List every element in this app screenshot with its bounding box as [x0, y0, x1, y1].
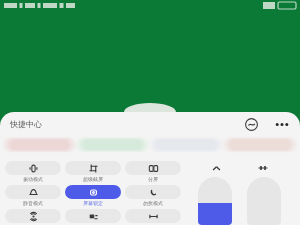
button[interactable]: Volume settings [248, 162, 278, 174]
button[interactable]: More options [274, 118, 290, 131]
button[interactable]: Quick toggle [125, 209, 181, 223]
button[interactable]: Expand brightness [201, 162, 231, 174]
staticText: 快捷中心 [10, 119, 42, 129]
button[interactable] [226, 137, 294, 155]
staticText: 振动模式 [5, 176, 61, 182]
staticText: 超级截屏 [65, 176, 121, 182]
staticText: 分屏 [125, 176, 181, 182]
button[interactable]: 静音模式 [5, 185, 61, 206]
button[interactable] [152, 137, 220, 155]
button[interactable]: Cloud settings [245, 118, 258, 131]
button[interactable]: 振动模式 [5, 161, 61, 182]
button[interactable] [79, 137, 146, 155]
button[interactable]: Brightness [198, 177, 232, 225]
button[interactable]: 分屏 [125, 161, 181, 182]
button[interactable]: 超级截屏 [65, 161, 121, 182]
button[interactable]: Quick toggle [65, 209, 121, 223]
staticText: 屏幕锁定 [65, 200, 121, 206]
button[interactable]: Volume [247, 177, 281, 225]
button[interactable]: 屏幕锁定 [65, 185, 121, 206]
staticText: 勿扰模式 [125, 200, 181, 206]
staticText: 静音模式 [5, 200, 61, 206]
button[interactable]: 勿扰模式 [125, 185, 181, 206]
button[interactable]: Quick toggle [5, 209, 61, 223]
button[interactable] [6, 137, 73, 155]
